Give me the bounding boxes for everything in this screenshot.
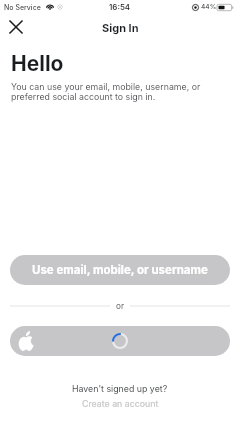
button[interactable]: Use email, mobile, or username bbox=[10, 255, 230, 285]
staticText: Use email, mobile, or username bbox=[32, 263, 208, 277]
button[interactable]: Close bbox=[5, 16, 27, 38]
staticText: Haven't signed up yet? bbox=[72, 383, 168, 394]
staticText: 16:54 bbox=[109, 2, 131, 12]
staticText: or bbox=[116, 301, 124, 311]
button[interactable]: Create an account bbox=[74, 396, 167, 411]
staticText: No Service bbox=[4, 3, 41, 11]
staticText: 44% bbox=[201, 3, 217, 11]
staticText: Create an account bbox=[82, 398, 159, 409]
button[interactable]: Sign in with Apple bbox=[10, 326, 230, 356]
staticText: Sign In bbox=[102, 21, 139, 34]
staticText: You can use your email, mobile, username… bbox=[11, 81, 207, 102]
staticText: Hello bbox=[11, 51, 64, 76]
